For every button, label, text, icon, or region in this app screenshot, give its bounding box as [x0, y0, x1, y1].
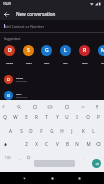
- button[interactable]: R: [31, 110, 41, 123]
- staticText: L: [64, 47, 67, 54]
- staticText: D: [7, 77, 11, 83]
- staticText: 10:29: [3, 2, 11, 6]
- button[interactable]: Home: [46, 172, 58, 184]
- button[interactable]: Shift: [1, 140, 9, 148]
- staticText: U: [65, 114, 69, 120]
- button[interactable]: A: [5, 124, 15, 137]
- staticText: R: [35, 114, 38, 120]
- button[interactable]: Translate: [63, 103, 70, 110]
- staticText: Y: [56, 114, 59, 120]
- button[interactable]: Recents: [73, 172, 85, 184]
- button[interactable]: Back: [18, 172, 30, 184]
- staticText: Add Contact or Number: [4, 24, 45, 29]
- staticText: T: [45, 114, 48, 120]
- staticText: P: [97, 114, 100, 120]
- button[interactable]: More options: [79, 103, 86, 110]
- button[interactable]: Close toolbar: [0, 103, 7, 110]
- button[interactable]: O: [83, 110, 93, 123]
- staticText: D: [8, 47, 12, 54]
- staticText: Mia: [101, 61, 104, 64]
- staticText: Z: [25, 141, 28, 147]
- staticText: .: [83, 155, 84, 160]
- staticText: S: [20, 128, 23, 134]
- staticText: G: [7, 93, 11, 99]
- button[interactable]: S: [19, 43, 38, 65]
- button[interactable]: C: [41, 137, 51, 150]
- button[interactable]: T: [41, 110, 51, 123]
- staticText: Sofia: [26, 61, 32, 64]
- button[interactable]: W: [10, 110, 20, 123]
- button[interactable]: D: [26, 124, 36, 137]
- staticText: Lisa: [63, 61, 68, 64]
- button[interactable]: G: [47, 124, 57, 137]
- button[interactable]: E: [21, 110, 31, 123]
- button[interactable]: L: [56, 43, 75, 65]
- button[interactable]: U: [62, 110, 72, 123]
- staticText: F: [40, 128, 43, 134]
- button[interactable]: Z: [21, 137, 31, 150]
- button[interactable]: V: [52, 137, 62, 150]
- button[interactable]: M: [94, 43, 104, 65]
- staticText: E: [25, 114, 28, 120]
- staticText: L: [92, 128, 95, 134]
- button[interactable]: I: [72, 110, 82, 123]
- staticText: H: [60, 128, 64, 134]
- button[interactable]: ?123: [3, 153, 13, 162]
- button[interactable]: H: [57, 124, 67, 137]
- button[interactable]: M: [83, 137, 93, 150]
- button[interactable]: Emoji: [24, 153, 32, 162]
- staticText: K: [82, 128, 85, 134]
- button[interactable]: Stickers: [31, 103, 38, 110]
- staticText: I: [76, 114, 78, 120]
- staticText: C: [45, 141, 48, 147]
- button[interactable]: F: [36, 124, 46, 137]
- button[interactable]: X: [31, 137, 41, 150]
- button[interactable]: G: [0, 87, 104, 103]
- button[interactable]: G: [37, 43, 56, 65]
- staticText: N: [75, 141, 79, 147]
- staticText: ?123: [5, 156, 11, 160]
- button[interactable]: ,: [15, 153, 23, 162]
- button[interactable]: Send: [92, 159, 101, 168]
- staticText: D: [29, 128, 33, 134]
- button[interactable]: Back: [0, 8, 13, 21]
- button[interactable]: N: [72, 137, 82, 150]
- staticText: 9678917345: [16, 96, 28, 99]
- staticText: New conversation: [16, 11, 56, 17]
- button[interactable]: D: [0, 43, 19, 65]
- button[interactable]: Y: [52, 110, 62, 123]
- button[interactable]: P: [93, 110, 103, 123]
- button[interactable]: J: [67, 124, 77, 137]
- staticText: G: [45, 47, 49, 54]
- button[interactable]: B: [62, 137, 72, 150]
- button[interactable]: GIF: [46, 103, 53, 110]
- staticText: Suggestions: [4, 37, 21, 41]
- staticText: J: [71, 128, 73, 134]
- staticText: Daniel: [6, 61, 14, 64]
- staticText: Gary: [44, 61, 50, 64]
- button[interactable]: Add Contact or Number: [0, 20, 104, 32]
- staticText: Ryan: [82, 61, 88, 64]
- staticText: R: [83, 47, 87, 54]
- button[interactable]: S: [16, 124, 26, 137]
- button[interactable]: L: [88, 124, 98, 137]
- staticText: W: [13, 114, 18, 120]
- staticText: Q: [3, 114, 7, 120]
- button[interactable]: D: [0, 71, 104, 87]
- staticText: B: [66, 141, 69, 147]
- button[interactable]: K: [78, 124, 88, 137]
- button[interactable]: Search: [15, 103, 22, 110]
- staticText: A: [9, 128, 12, 134]
- staticText: V: [56, 141, 59, 147]
- button[interactable]: R: [75, 43, 94, 65]
- button[interactable]: Backspace: [94, 140, 102, 148]
- staticText: Daniel: [16, 76, 24, 79]
- staticText: M: [86, 141, 91, 147]
- staticText: ,: [19, 155, 20, 160]
- button[interactable]: Q: [0, 110, 10, 123]
- button[interactable]: Voice input: [93, 103, 100, 110]
- staticText: 9234567891: [16, 80, 28, 83]
- staticText: S: [27, 47, 30, 54]
